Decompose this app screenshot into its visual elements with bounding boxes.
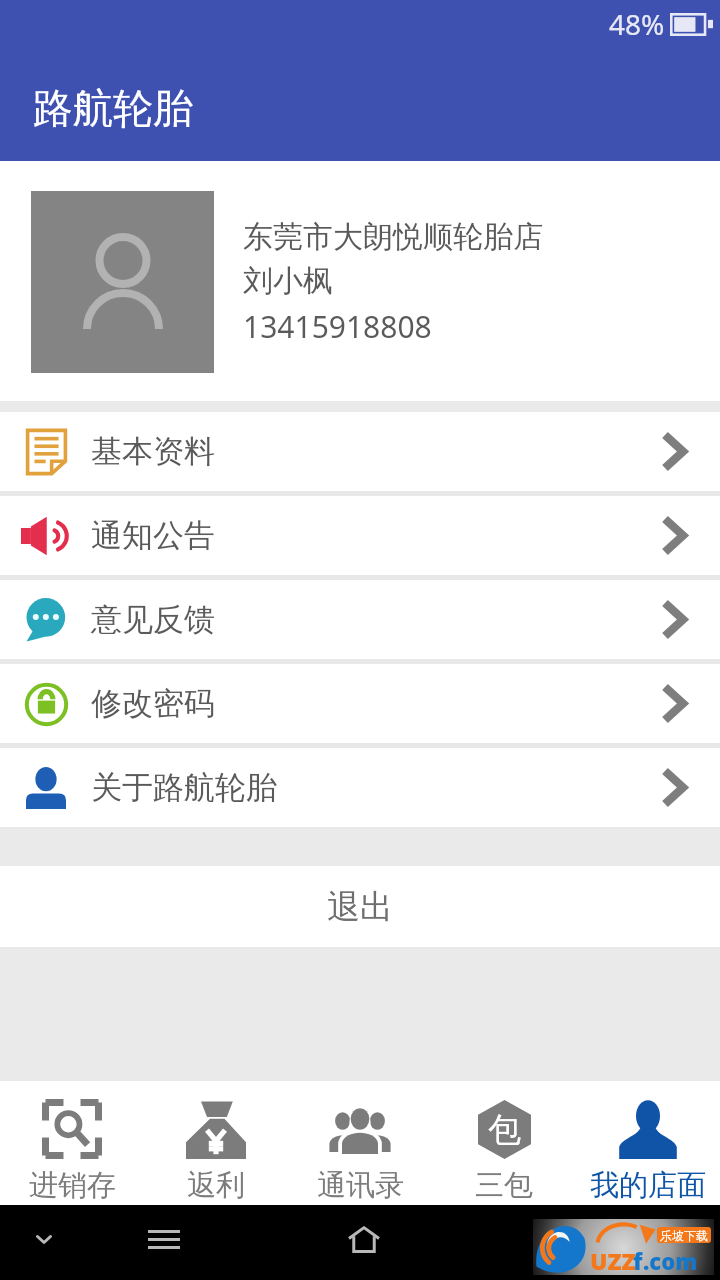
staticText: f [633, 1245, 643, 1276]
staticText: 修改密码 [91, 684, 215, 723]
staticText: 意见反馈 [91, 600, 215, 639]
button[interactable]: 包 [432, 1081, 576, 1205]
staticText: 东莞市大朗悦顺轮胎店 [243, 218, 543, 256]
button[interactable]: 修改密码 [0, 664, 720, 743]
button[interactable]: 关于路航轮胎 [0, 748, 720, 827]
staticText: 关于路航轮胎 [91, 768, 277, 807]
button[interactable]: 进销存 [0, 1081, 144, 1205]
button[interactable]: 基本资料 [0, 412, 720, 491]
button[interactable]: Back [14, 1209, 74, 1269]
button[interactable]: 通讯录 [288, 1081, 432, 1205]
staticText: 包 [488, 1109, 521, 1151]
staticText: .com [643, 1246, 698, 1276]
staticText: 48% [609, 5, 665, 43]
staticText: 退出 [327, 886, 393, 928]
staticText: 进销存 [29, 1167, 116, 1204]
staticText: 通知公告 [91, 516, 215, 555]
staticText: 基本资料 [91, 432, 215, 471]
staticText: 乐坡下载 [660, 1228, 708, 1243]
button[interactable]: 通知公告 [0, 496, 720, 575]
staticText: 通讯录 [317, 1167, 404, 1204]
button[interactable]: 我的店面 [576, 1081, 720, 1205]
staticText: 13415918808 [243, 306, 432, 347]
staticText: 刘小枫 [243, 262, 333, 300]
staticText: UZZ [590, 1245, 636, 1276]
staticText: 三包 [475, 1167, 533, 1204]
button[interactable]: 退出 [0, 866, 720, 947]
button[interactable]: 返利 [144, 1081, 288, 1205]
button[interactable]: 意见反馈 [0, 580, 720, 659]
button[interactable]: Home [334, 1209, 394, 1269]
button[interactable]: Recent apps [134, 1209, 194, 1269]
staticText: 我的店面 [590, 1167, 706, 1204]
staticText: 返利 [187, 1167, 245, 1204]
staticText: 路航轮胎 [33, 83, 193, 133]
